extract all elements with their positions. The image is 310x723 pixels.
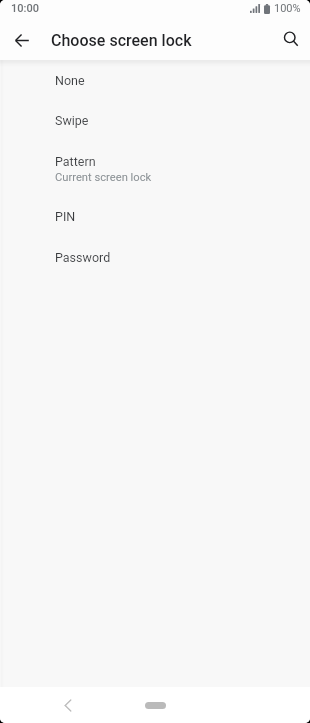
- button[interactable]: Password: [0, 235, 310, 275]
- staticText: Current screen lock: [55, 171, 152, 184]
- staticText: 10:00: [11, 2, 39, 15]
- button[interactable]: Pattern: [0, 140, 310, 195]
- staticText: Choose screen lock: [51, 31, 192, 50]
- button[interactable]: PIN: [0, 195, 310, 235]
- staticText: Password: [55, 250, 111, 265]
- staticText: 100%: [274, 2, 301, 15]
- staticText: PIN: [55, 209, 76, 224]
- button[interactable]: Swipe: [0, 100, 310, 140]
- button[interactable]: Search: [274, 22, 307, 55]
- staticText: Pattern: [55, 154, 96, 169]
- button[interactable]: Back: [5, 24, 38, 57]
- staticText: Swipe: [55, 113, 89, 128]
- button[interactable]: Back: [56, 693, 80, 717]
- button[interactable]: None: [0, 60, 310, 100]
- staticText: None: [55, 73, 85, 88]
- button[interactable]: Home: [133, 694, 177, 716]
